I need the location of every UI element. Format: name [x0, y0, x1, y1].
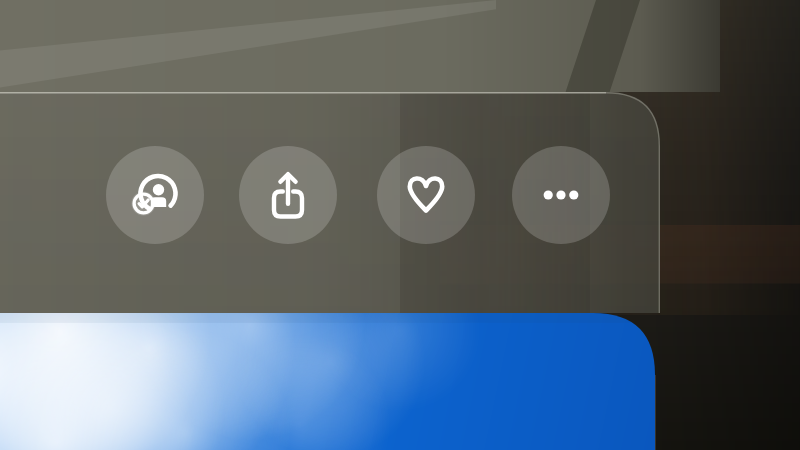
button[interactable]: Share — [239, 146, 337, 244]
button[interactable]: Like — [377, 146, 475, 244]
button[interactable]: Verified profile — [106, 146, 204, 244]
button[interactable]: More options — [512, 146, 610, 244]
